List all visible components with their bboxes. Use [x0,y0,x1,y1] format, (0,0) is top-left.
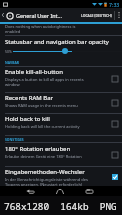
button[interactable]: Home [53,186,67,196]
staticText: General User Int... [16,12,62,19]
staticText: 7:33 [109,1,120,8]
button[interactable]: More options [115,8,122,22]
button[interactable]: Eingabemethoden-Wechsler [0,166,122,187]
button[interactable]: Recent apps [82,186,96,196]
staticText: LOCALE (DEUTSCH) [81,13,112,18]
staticText: Does nothing when autobrightness is enab… [5,24,76,34]
staticText: Hold back to kill [5,115,50,123]
button[interactable]: Hold back to kill [0,113,122,135]
button[interactable]: Navigate up [0,8,5,22]
button[interactable]: 180° Rotation erlauben [0,143,122,166]
button[interactable]: LOCALE (DEUTSCH) [80,10,113,21]
staticText: Statusbar and navigation bar opacity [5,38,109,46]
staticText: Holding back will kill the current activ… [5,124,80,129]
staticText: NAVBAR [5,60,19,65]
button[interactable]: Does nothing when autobrightness is enab… [0,24,122,35]
staticText: 50% [5,49,12,54]
staticText: Displays a button to kill all apps in re… [5,77,84,87]
staticText: Shows RAM usage in the recents menu [5,103,78,108]
staticText: Erlaube deinem Gerät eine 180° Rotation [5,154,82,159]
button[interactable]: Statusbar and navigation bar opacity [0,35,122,58]
button[interactable]: Back [23,186,37,196]
staticText: In der Benachrichtigungsleiste während d… [5,177,88,187]
staticText: Eingabemethoden-Wechsler [5,168,85,176]
staticText: Enable kill-all-button [5,68,63,76]
button[interactable]: Enable kill-all-button [0,66,122,92]
staticText: Recents RAM Bar [5,94,54,102]
staticText: 768x1280 164kb PNG [4,200,117,213]
staticText: 180° Rotation erlauben [5,145,71,153]
staticText: SONSTIGES [5,137,24,142]
button[interactable]: Recents RAM Bar [0,92,122,114]
